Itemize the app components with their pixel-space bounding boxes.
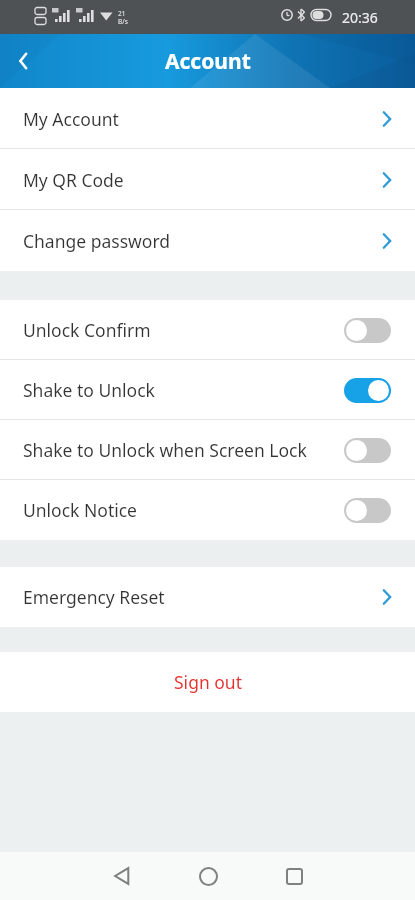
- staticText: My Account: [23, 107, 119, 131]
- button[interactable]: [165, 852, 251, 900]
- button[interactable]: [251, 852, 337, 900]
- button[interactable]: Shake to Unlock: [0, 360, 415, 420]
- button[interactable]: [344, 378, 391, 403]
- staticText: Sign out: [174, 670, 242, 694]
- staticText: 20:36: [342, 8, 378, 27]
- staticText: Emergency Reset: [23, 585, 165, 609]
- staticText: Shake to Unlock: [23, 378, 155, 402]
- staticText: Change password: [23, 229, 171, 253]
- staticText: My QR Code: [23, 168, 124, 192]
- button[interactable]: My QR Code: [0, 149, 415, 210]
- staticText: Unlock Confirm: [23, 318, 151, 342]
- button[interactable]: Change password: [0, 210, 415, 271]
- button[interactable]: My Account: [0, 88, 415, 149]
- button[interactable]: [344, 498, 391, 523]
- button[interactable]: [79, 852, 165, 900]
- staticText: Unlock Notice: [23, 498, 137, 522]
- staticText: 21 B/s: [118, 9, 128, 26]
- button[interactable]: [344, 438, 391, 463]
- button[interactable]: Unlock Confirm: [0, 300, 415, 360]
- button[interactable]: [0, 37, 48, 85]
- button[interactable]: [344, 318, 391, 343]
- button[interactable]: Unlock Notice: [0, 480, 415, 540]
- staticText: Shake to Unlock when Screen Lock: [23, 438, 307, 462]
- staticText: Account: [165, 47, 251, 76]
- button[interactable]: Sign out: [0, 652, 415, 712]
- button[interactable]: Shake to Unlock when Screen Lock: [0, 420, 415, 480]
- button[interactable]: Emergency Reset: [0, 567, 415, 627]
